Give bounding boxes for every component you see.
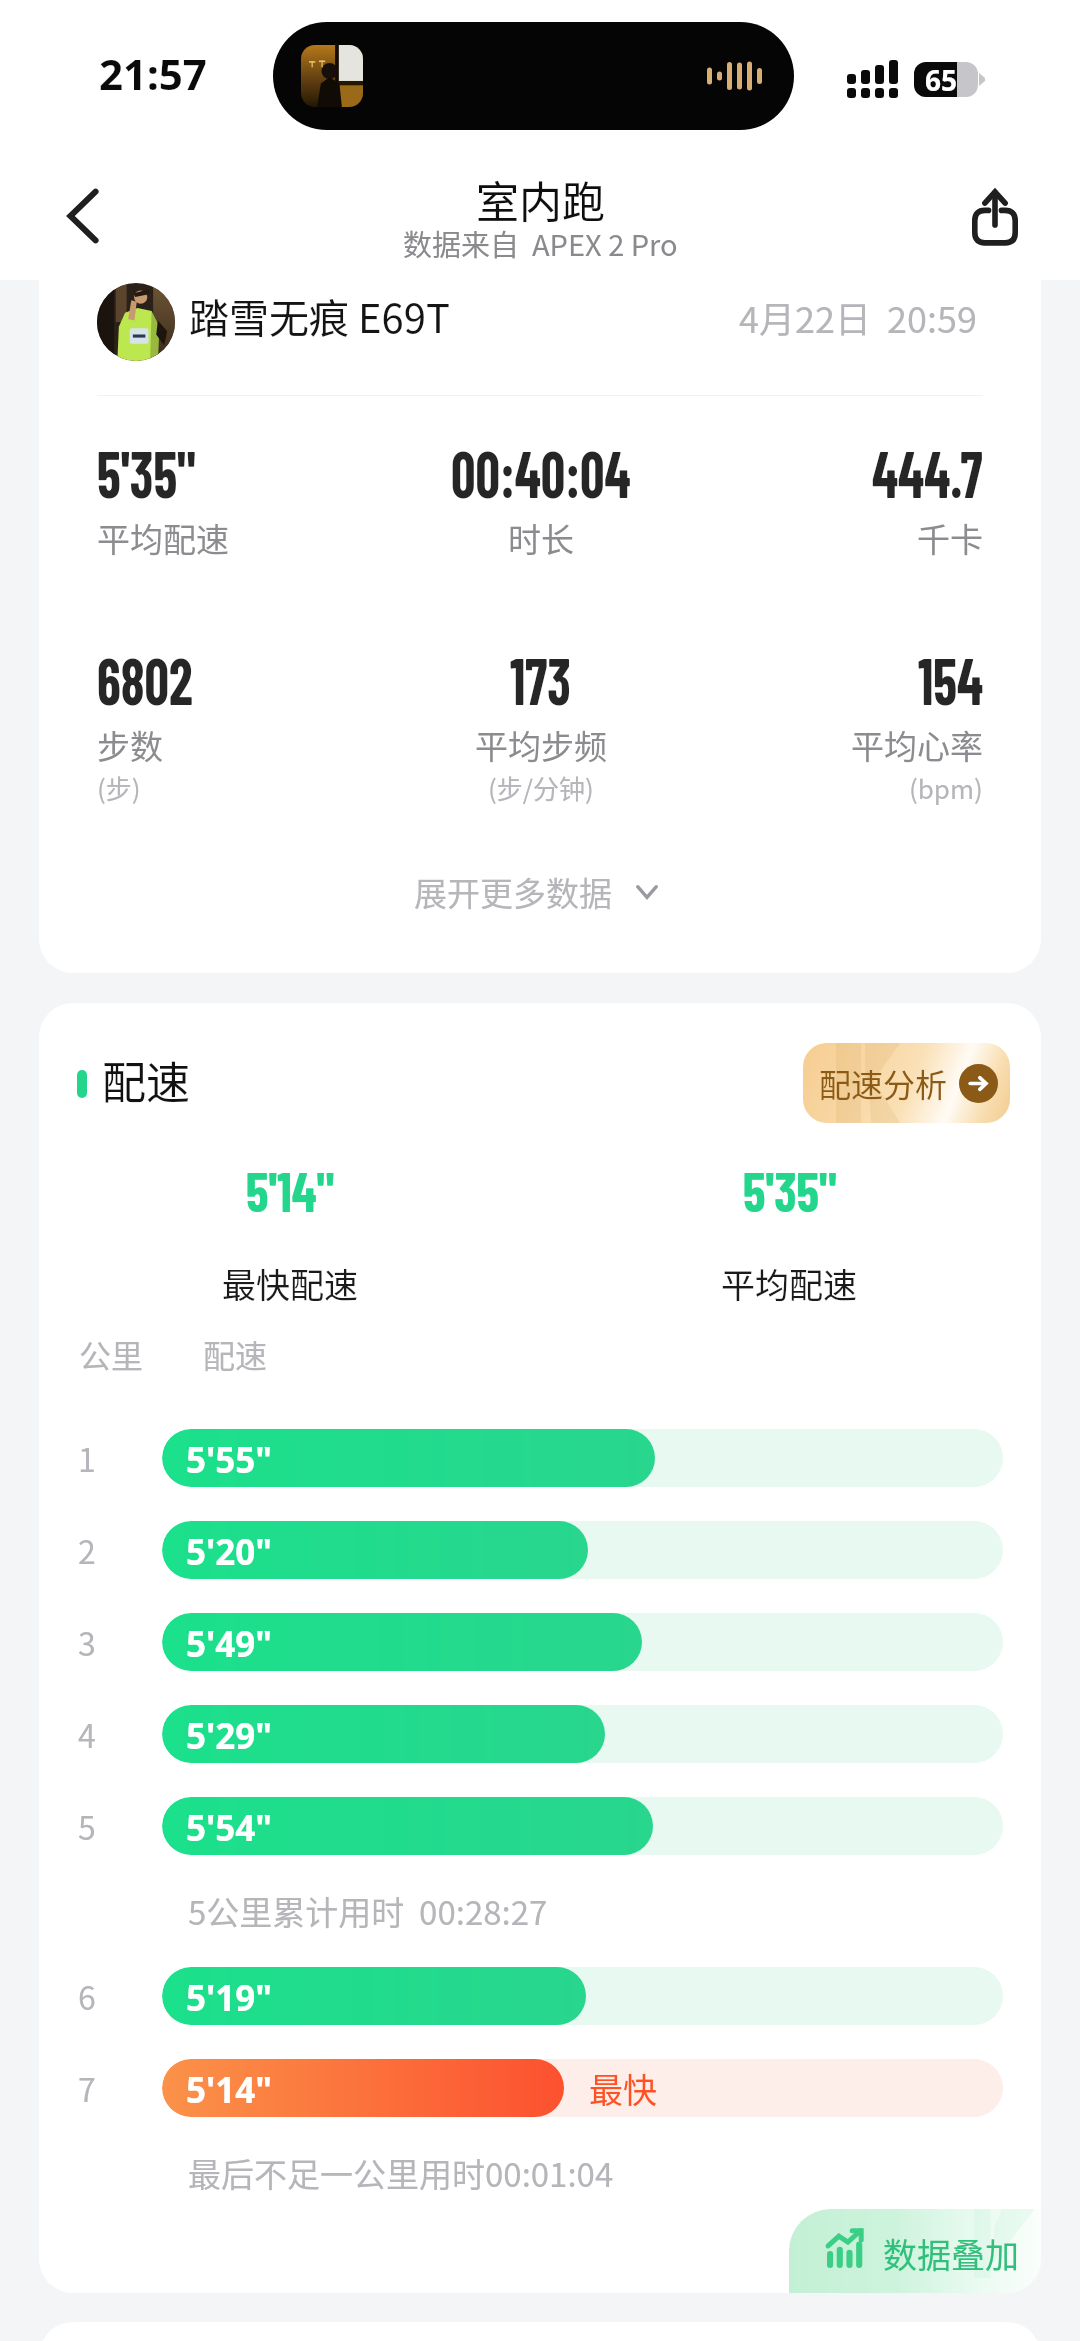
staticText: 5 [78, 1803, 96, 1849]
staticText: 5'19" [186, 1974, 273, 2022]
staticText: 173 [510, 640, 571, 718]
staticText: 5'14" [246, 1157, 334, 1223]
staticText: (步) [97, 769, 141, 807]
staticText: 5'20" [186, 1528, 273, 1576]
staticText: 配速 [102, 1048, 190, 1112]
staticText: 配速 [203, 1331, 268, 1377]
button[interactable]: 展开更多数据 [39, 853, 1037, 931]
staticText: 5公里累计用时 00:28:27 [188, 1887, 548, 1935]
staticText: 数据来自 APEX 2 Pro [403, 222, 678, 264]
staticText: 5'29" [186, 1712, 273, 1760]
staticText: 5'49" [186, 1620, 273, 1668]
staticText: 3 [78, 1619, 96, 1665]
staticText: 踏雪无痕 E69T [189, 287, 450, 345]
staticText: 4月22日 20:59 [739, 291, 977, 343]
staticText: 最后不足一公里用时00:01:04 [188, 2149, 614, 2197]
staticText: 5'14" [186, 2066, 273, 2114]
staticText: 2 [78, 1527, 96, 1573]
staticText: 00:40:04 [451, 433, 631, 511]
staticText: 步数 [97, 721, 163, 769]
staticText: 时长 [508, 514, 574, 562]
staticText: (bpm) [909, 769, 983, 807]
button[interactable]: 数据叠加 [789, 2209, 1041, 2293]
button[interactable]: Back [28, 161, 138, 271]
staticText: 室内跑 [476, 168, 605, 230]
staticText: 154 [918, 640, 984, 718]
staticText: 65 [925, 62, 958, 96]
staticText: 平均步频 [475, 721, 607, 769]
staticText: 5'35" [743, 1157, 837, 1223]
staticText: 6 [78, 1973, 96, 2019]
staticText: 平均心率 [851, 721, 983, 769]
staticText: 最快 [589, 2064, 657, 2113]
staticText: 平均配速 [97, 514, 229, 562]
staticText: 5'35" [97, 433, 196, 511]
staticText: 21:57 [99, 45, 207, 102]
button[interactable]: 配速分析 [803, 1043, 1010, 1123]
staticText: 5'54" [186, 1804, 273, 1852]
staticText: 数据叠加 [883, 2229, 1019, 2278]
staticText: 展开更多数据 [414, 868, 612, 916]
staticText: 1 [78, 1435, 96, 1481]
staticText: 4 [78, 1711, 96, 1757]
button[interactable]: Share [940, 161, 1050, 271]
staticText: 最快配速 [222, 1259, 358, 1308]
staticText: (步/分钟) [488, 769, 594, 807]
staticText: 5'55" [186, 1436, 273, 1484]
staticText: 千卡 [917, 514, 983, 562]
staticText: 公里 [79, 1331, 144, 1377]
staticText: 444.7 [872, 433, 983, 511]
staticText: 6802 [97, 640, 193, 718]
staticText: 配速分析 [819, 1060, 948, 1106]
staticText: 平均配速 [721, 1259, 857, 1308]
staticText: 7 [78, 2065, 96, 2111]
